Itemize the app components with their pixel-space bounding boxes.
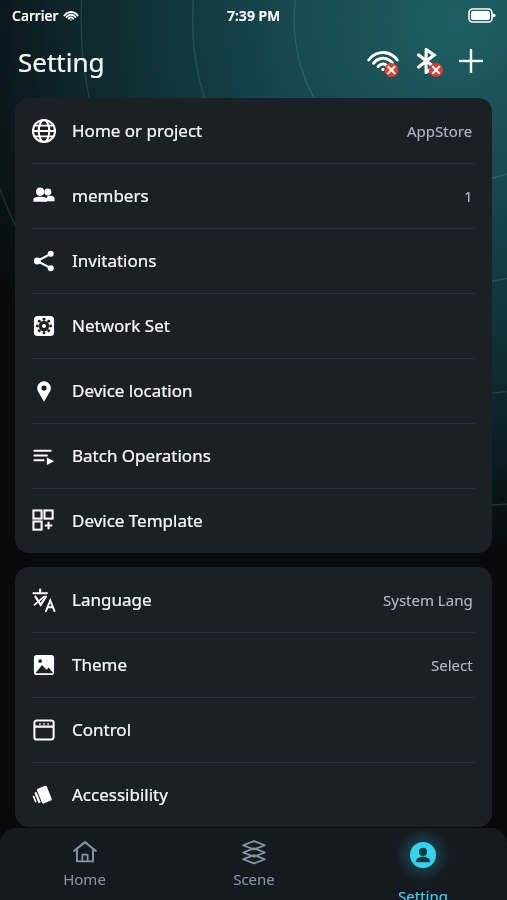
staticText: members	[72, 184, 149, 207]
button[interactable]: Setting	[338, 828, 507, 900]
button[interactable]: Network Set	[15, 293, 492, 358]
staticText: 7:39 PM	[227, 6, 281, 25]
staticText: Scene	[233, 869, 275, 889]
staticText: Network Set	[72, 314, 170, 337]
button[interactable]: Invitations	[15, 228, 492, 293]
staticText: Device location	[72, 379, 193, 402]
staticText: Batch Operations	[72, 444, 211, 467]
staticText: Control	[72, 718, 132, 741]
button[interactable]: Theme	[15, 632, 492, 697]
staticText: Setting	[18, 44, 105, 79]
staticText: Language	[72, 588, 152, 611]
staticText: Home or project	[72, 119, 203, 142]
staticText: Device Template	[72, 509, 203, 532]
button[interactable]: members	[15, 163, 492, 228]
button[interactable]: Device Template	[15, 488, 492, 553]
button[interactable]: Home	[0, 828, 169, 900]
staticText: Accessibility	[72, 783, 168, 806]
button[interactable]: Bluetooth disconnected	[405, 39, 449, 83]
staticText: Setting	[398, 886, 448, 900]
staticText: Carrier	[12, 6, 59, 25]
staticText: Home	[63, 869, 106, 889]
button[interactable]: Wi-Fi disconnected	[361, 39, 405, 83]
button[interactable]: Control	[15, 697, 492, 762]
staticText: Invitations	[72, 249, 157, 272]
button[interactable]: Home or project	[15, 98, 492, 163]
staticText: AppStore	[407, 121, 473, 141]
staticText: 1	[464, 186, 473, 206]
button[interactable]: Batch Operations	[15, 423, 492, 488]
button[interactable]: Language	[15, 567, 492, 632]
button[interactable]: Add	[449, 39, 493, 83]
button[interactable]: Device location	[15, 358, 492, 423]
staticText: Select	[431, 655, 473, 675]
staticText: System Lang	[383, 590, 473, 610]
staticText: Theme	[72, 653, 128, 676]
button[interactable]: Scene	[169, 828, 338, 900]
button[interactable]: Accessibility	[15, 762, 492, 827]
